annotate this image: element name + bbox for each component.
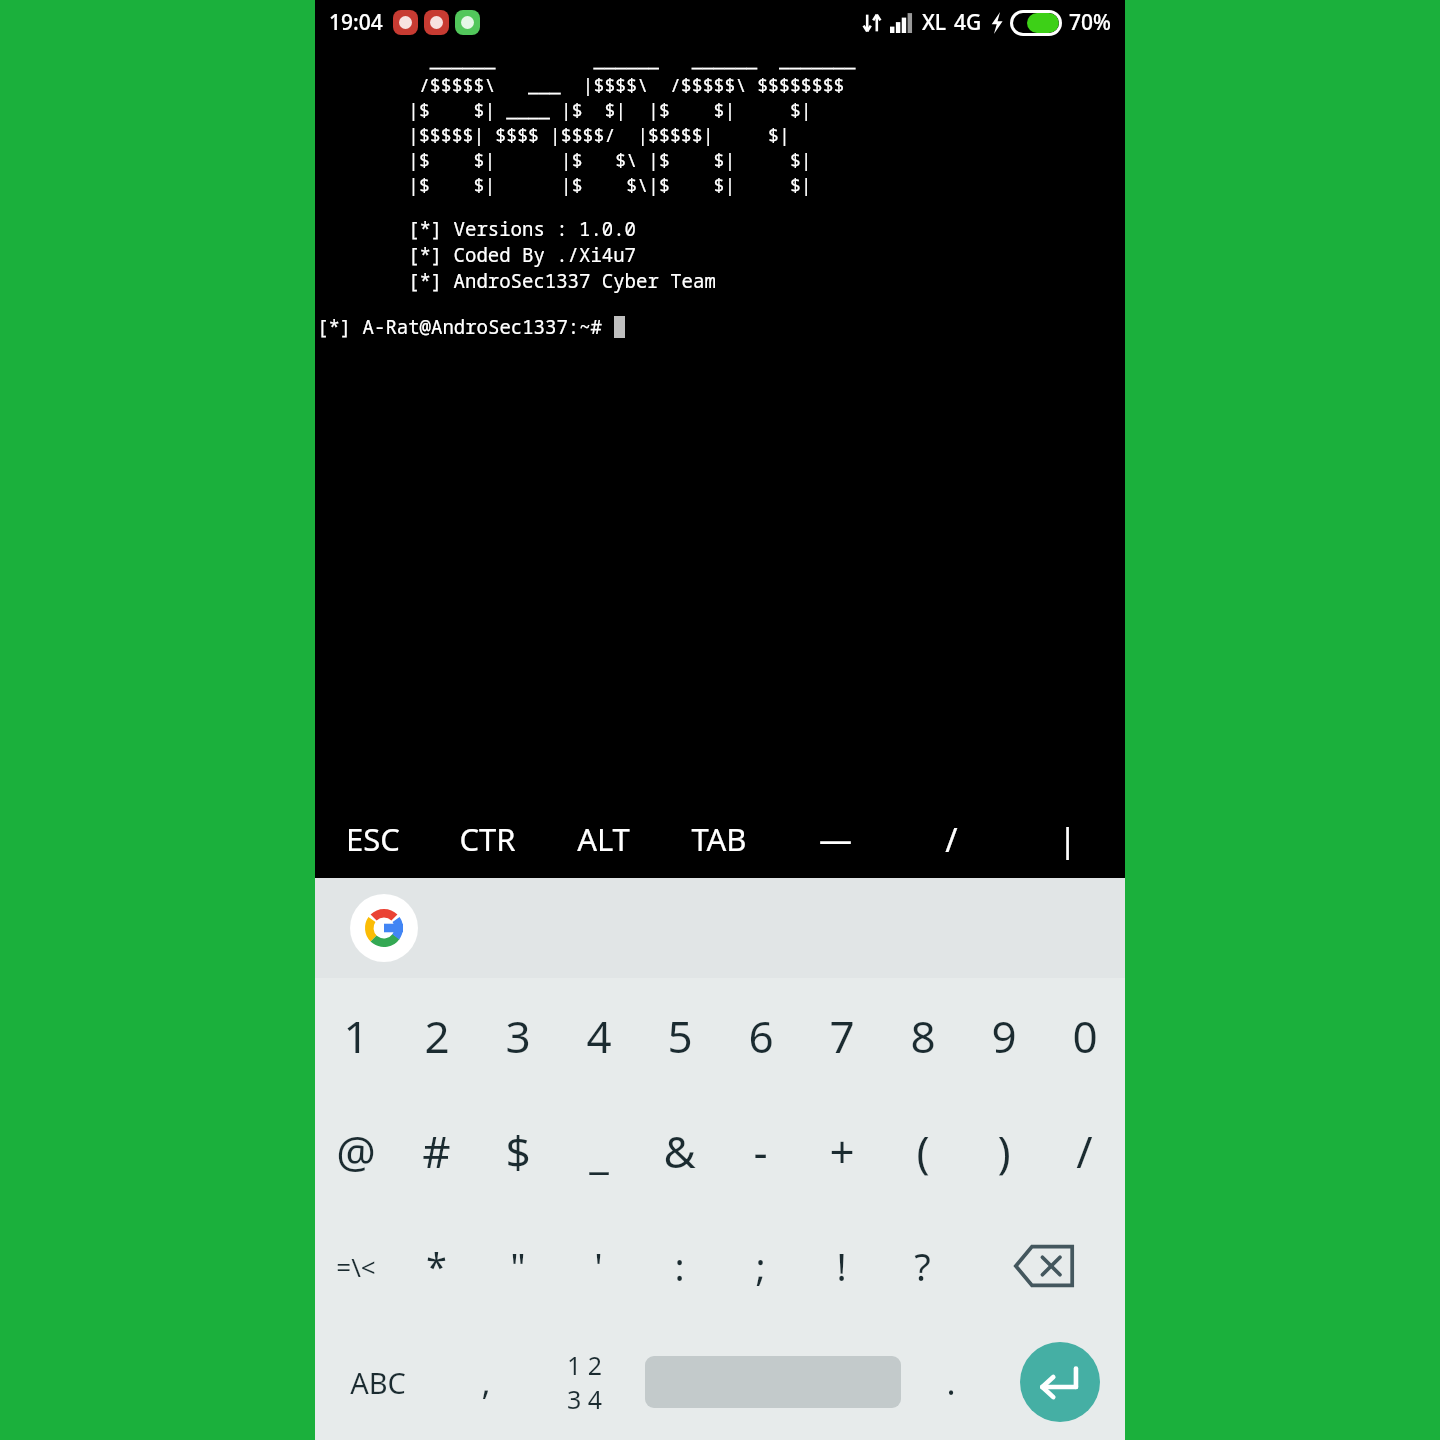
- button[interactable]: 7: [801, 978, 882, 1093]
- button[interactable]: ;: [720, 1208, 801, 1324]
- button[interactable]: Enter: [995, 1324, 1125, 1440]
- button[interactable]: 5: [639, 978, 720, 1093]
- button[interactable]: ): [963, 1093, 1044, 1208]
- button[interactable]: 6: [720, 978, 801, 1093]
- button[interactable]: Google: [350, 894, 418, 962]
- staticText: ': [594, 1240, 603, 1292]
- button[interactable]: 1: [315, 978, 396, 1093]
- button[interactable]: :: [639, 1208, 720, 1324]
- staticText: _: [589, 1121, 609, 1181]
- staticText: ;: [755, 1240, 766, 1292]
- button[interactable]: |: [1009, 800, 1125, 878]
- staticText: #: [422, 1121, 451, 1181]
- button[interactable]: ESC: [315, 800, 430, 878]
- button[interactable]: .: [906, 1324, 995, 1440]
- button[interactable]: @: [315, 1093, 396, 1208]
- button[interactable]: ,: [441, 1324, 530, 1440]
- staticText: 3 4: [567, 1382, 603, 1416]
- staticText: /$$$$$\ ___ |$$$$\ /$$$$$\ $$$$$$$$: [408, 73, 845, 98]
- staticText: &: [663, 1121, 696, 1181]
- staticText: 4G: [954, 8, 982, 37]
- staticText: 5: [667, 1006, 693, 1066]
- button[interactable]: /: [893, 800, 1009, 878]
- staticText: 70%: [1069, 8, 1111, 37]
- button[interactable]: /: [1044, 1093, 1125, 1208]
- button[interactable]: 2: [396, 978, 477, 1093]
- button[interactable]: 8: [882, 978, 963, 1093]
- staticText: 3: [505, 1006, 531, 1066]
- button[interactable]: _: [558, 1093, 639, 1208]
- staticText: 1 2: [567, 1348, 603, 1382]
- button[interactable]: ALT: [545, 800, 661, 878]
- button[interactable]: —: [777, 800, 893, 878]
- staticText: *: [426, 1240, 447, 1292]
- staticText: ESC: [346, 818, 400, 860]
- staticText: |$ $| ____ |$ $| |$ $| $|: [408, 98, 812, 123]
- staticText: CTR: [459, 818, 516, 860]
- staticText: [*] Coded By ./Xi4u7: [408, 242, 637, 268]
- staticText: |$ $| |$ $\|$ $| $|: [408, 173, 812, 198]
- button[interactable]: CTR: [430, 800, 545, 878]
- button[interactable]: [639, 1324, 906, 1440]
- button[interactable]: 4: [558, 978, 639, 1093]
- button[interactable]: 3: [477, 978, 558, 1093]
- staticText: !: [836, 1240, 847, 1292]
- staticText: 19:04: [329, 8, 383, 37]
- button[interactable]: 0: [1044, 978, 1125, 1093]
- staticText: |: [1058, 817, 1077, 862]
- button[interactable]: !: [801, 1208, 882, 1324]
- staticText: ": [510, 1240, 526, 1292]
- staticText: 2: [424, 1006, 450, 1066]
- staticText: /: [945, 817, 958, 862]
- staticText: 0: [1072, 1006, 1098, 1066]
- button[interactable]: ": [477, 1208, 558, 1324]
- staticText: :: [674, 1240, 685, 1292]
- button[interactable]: (: [882, 1093, 963, 1208]
- staticText: (: [916, 1121, 930, 1181]
- staticText: ,: [481, 1359, 491, 1405]
- staticText: ): [997, 1121, 1011, 1181]
- staticText: ALT: [577, 818, 630, 860]
- button[interactable]: -: [720, 1093, 801, 1208]
- staticText: XL: [922, 8, 947, 37]
- staticText: $: [505, 1121, 531, 1181]
- staticText: |$ $| |$ $\ |$ $| $|: [408, 148, 812, 173]
- staticText: [*] AndroSec1337 Cyber Team: [408, 268, 716, 294]
- staticText: 7: [829, 1006, 855, 1066]
- staticText: TAB: [691, 818, 747, 860]
- button[interactable]: 9: [963, 978, 1044, 1093]
- staticText: ______ ______ ______ _______: [408, 48, 856, 73]
- button[interactable]: *: [396, 1208, 477, 1324]
- button[interactable]: ': [558, 1208, 639, 1324]
- button[interactable]: Backspace: [963, 1208, 1125, 1324]
- staticText: |$$$$$| $$$$ |$$$$/ |$$$$$| $|: [408, 123, 790, 148]
- staticText: —: [819, 817, 852, 862]
- button[interactable]: ?: [882, 1208, 963, 1324]
- staticText: -: [753, 1121, 768, 1181]
- staticText: +: [829, 1121, 855, 1181]
- button[interactable]: &: [639, 1093, 720, 1208]
- staticText: ABC: [350, 1363, 406, 1402]
- staticText: 4: [586, 1006, 612, 1066]
- staticText: [*] A-Rat@AndroSec1337:~#: [317, 314, 614, 340]
- staticText: =\<: [336, 1249, 376, 1284]
- button[interactable]: #: [396, 1093, 477, 1208]
- staticText: /: [1076, 1121, 1093, 1181]
- staticText: @: [336, 1121, 376, 1181]
- staticText: 8: [910, 1006, 936, 1066]
- staticText: .: [946, 1359, 956, 1405]
- button[interactable]: =\<: [315, 1208, 396, 1324]
- staticText: ?: [914, 1240, 931, 1292]
- button[interactable]: 1 2: [530, 1324, 639, 1440]
- button[interactable]: ABC: [315, 1324, 441, 1440]
- button[interactable]: TAB: [661, 800, 777, 878]
- staticText: 9: [991, 1006, 1017, 1066]
- staticText: 6: [748, 1006, 774, 1066]
- button[interactable]: $: [477, 1093, 558, 1208]
- staticText: [*] Versions : 1.0.0: [408, 216, 637, 242]
- button[interactable]: +: [801, 1093, 882, 1208]
- staticText: 1: [343, 1006, 369, 1066]
